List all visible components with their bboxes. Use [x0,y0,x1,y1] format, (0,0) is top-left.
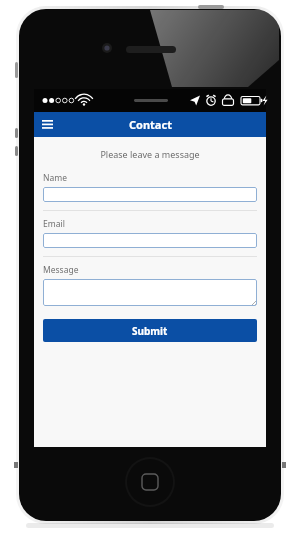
staticText: Submit [132,324,168,338]
staticText: Message [43,264,79,276]
button[interactable]: Text input field [43,187,257,202]
staticText: Email [43,218,65,230]
button[interactable]: Text input field [43,279,257,306]
button[interactable]: Submit [43,319,257,342]
staticText: Please leave a message [43,148,257,160]
staticText: Name [43,172,67,184]
button[interactable]: Open navigation menu [38,115,57,134]
staticText: Contact [129,117,172,132]
button[interactable]: Text input field [43,233,257,248]
